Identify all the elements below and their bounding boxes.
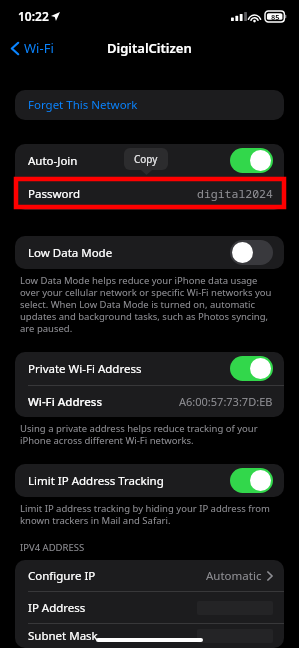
staticText: Automatic [206, 568, 262, 584]
button[interactable]: Low Data Mode [15, 236, 284, 269]
button[interactable]: Private Wi-Fi Address [15, 352, 284, 385]
button[interactable]: Toggle on [230, 356, 273, 381]
staticText: IPV4 ADDRESS [20, 541, 85, 554]
button[interactable]: Toggle on [230, 468, 273, 493]
staticText: Low Data Mode helps reduce your iPhone d… [20, 274, 279, 335]
staticText: Low Data Mode [28, 245, 113, 261]
staticText: Limit IP address tracking by hiding your… [20, 502, 279, 527]
button[interactable]: Toggle off [230, 240, 273, 265]
staticText: Subnet Mask [28, 628, 98, 644]
staticText: digital2024 [197, 186, 273, 202]
button[interactable]: Configure IP [15, 560, 284, 591]
button[interactable]: Copy [124, 148, 168, 170]
button[interactable]: Limit IP Address Tracking [15, 464, 284, 497]
staticText: Limit IP Address Tracking [28, 473, 164, 489]
staticText: A6:00:57:73:7D:EB [179, 394, 273, 409]
button[interactable]: Password [15, 178, 284, 210]
staticText: Forget This Network [28, 97, 138, 113]
button[interactable]: Wi-Fi Address [15, 386, 284, 417]
button[interactable]: Auto-Join [15, 144, 284, 177]
staticText: IP Address [28, 600, 86, 616]
staticText: Wi-Fi Address [28, 394, 102, 410]
staticText: Private Wi-Fi Address [28, 361, 142, 377]
staticText: Wi-Fi [24, 39, 54, 57]
button[interactable]: IP Address [15, 592, 284, 623]
button[interactable]: Wi-Fi [0, 36, 62, 60]
button[interactable]: Subnet Mask [15, 624, 284, 648]
staticText: 85 [271, 12, 280, 22]
staticText: Password [28, 186, 81, 202]
button[interactable]: Forget This Network [15, 90, 284, 120]
staticText: DigitalCitizen [107, 39, 192, 57]
staticText: 10:22 [18, 8, 49, 24]
staticText: Copy [134, 152, 158, 166]
staticText: Auto-Join [28, 153, 78, 169]
button[interactable]: Toggle on [230, 148, 273, 173]
staticText: Using a private address helps reduce tra… [20, 422, 279, 447]
staticText: Configure IP [28, 568, 96, 584]
